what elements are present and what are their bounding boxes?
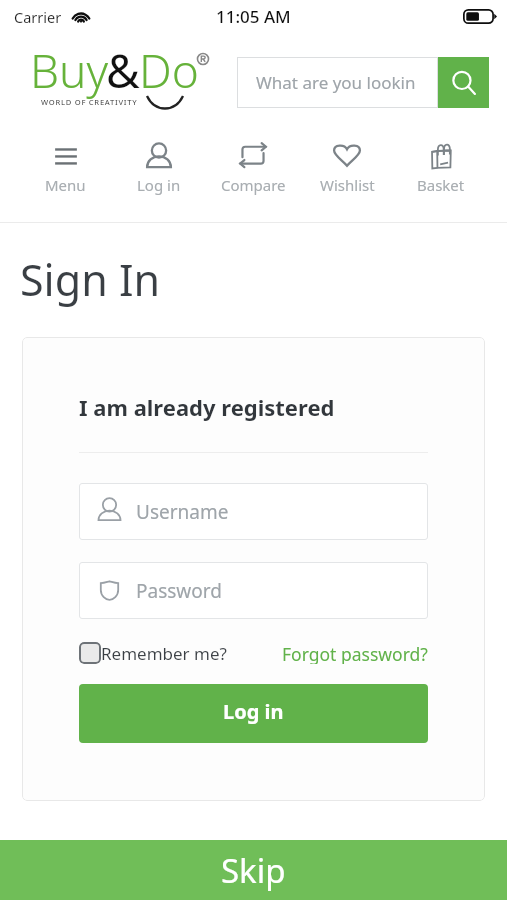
staticText: Log in xyxy=(137,175,181,195)
button[interactable]: Log in xyxy=(79,684,428,743)
staticText: I am already registered xyxy=(79,392,335,422)
button[interactable]: Remember me? xyxy=(79,642,227,664)
staticText: Carrier xyxy=(14,7,62,27)
staticText: Compare xyxy=(221,175,286,195)
button[interactable]: Log in xyxy=(112,125,206,196)
staticText: Sign In xyxy=(20,250,161,309)
staticText: & xyxy=(106,39,140,102)
button[interactable]: Menu xyxy=(19,125,112,196)
button[interactable]: Username xyxy=(79,483,428,540)
staticText: Basket xyxy=(417,175,465,195)
staticText: Wishlist xyxy=(320,175,375,195)
button[interactable]: Password xyxy=(79,562,428,619)
staticText: What are you lookin xyxy=(256,71,416,94)
button[interactable]: Basket xyxy=(394,125,488,196)
button[interactable]: Skip xyxy=(0,840,507,900)
staticText: Skip xyxy=(221,848,286,893)
button[interactable]: Forgot password? xyxy=(282,642,428,664)
staticText: Menu xyxy=(45,175,86,195)
staticText: Password xyxy=(136,578,222,604)
staticText: WORLD OF CREATIVITY xyxy=(41,97,138,107)
button[interactable]: Wishlist xyxy=(300,125,394,196)
staticText: Username xyxy=(136,499,229,525)
staticText: 11:05 AM xyxy=(216,5,291,28)
staticText: Do xyxy=(139,39,199,102)
staticText: Log in xyxy=(223,698,284,725)
staticText: Buy xyxy=(30,39,108,102)
button[interactable]: Compare xyxy=(206,125,300,196)
staticText: Remember me? xyxy=(101,642,227,664)
button[interactable]: Search xyxy=(438,57,489,108)
